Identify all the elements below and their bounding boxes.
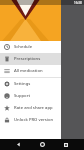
button[interactable]: Unlock PRO version <box>0 114 61 126</box>
staticText: Rate and share app <box>14 105 53 111</box>
button[interactable]: Rate and share app <box>0 102 61 114</box>
button[interactable]: Settings <box>0 78 61 90</box>
button[interactable]: Prescriptions <box>0 53 61 65</box>
button[interactable]: Home <box>37 139 48 150</box>
staticText: 16:38 <box>74 1 82 5</box>
button[interactable]: Schedule <box>0 41 61 53</box>
button[interactable]: Back <box>13 139 24 150</box>
staticText: Support <box>14 93 31 99</box>
staticText: Schedule <box>14 44 33 50</box>
staticText: All medication <box>14 68 43 74</box>
staticText: Prescriptions <box>14 56 41 62</box>
staticText: Unlock PRO version <box>14 117 54 123</box>
button[interactable]: Support <box>0 90 61 102</box>
staticText: Settings <box>14 81 31 87</box>
button[interactable]: Recent apps <box>60 139 71 150</box>
button[interactable]: All medication <box>0 65 61 77</box>
